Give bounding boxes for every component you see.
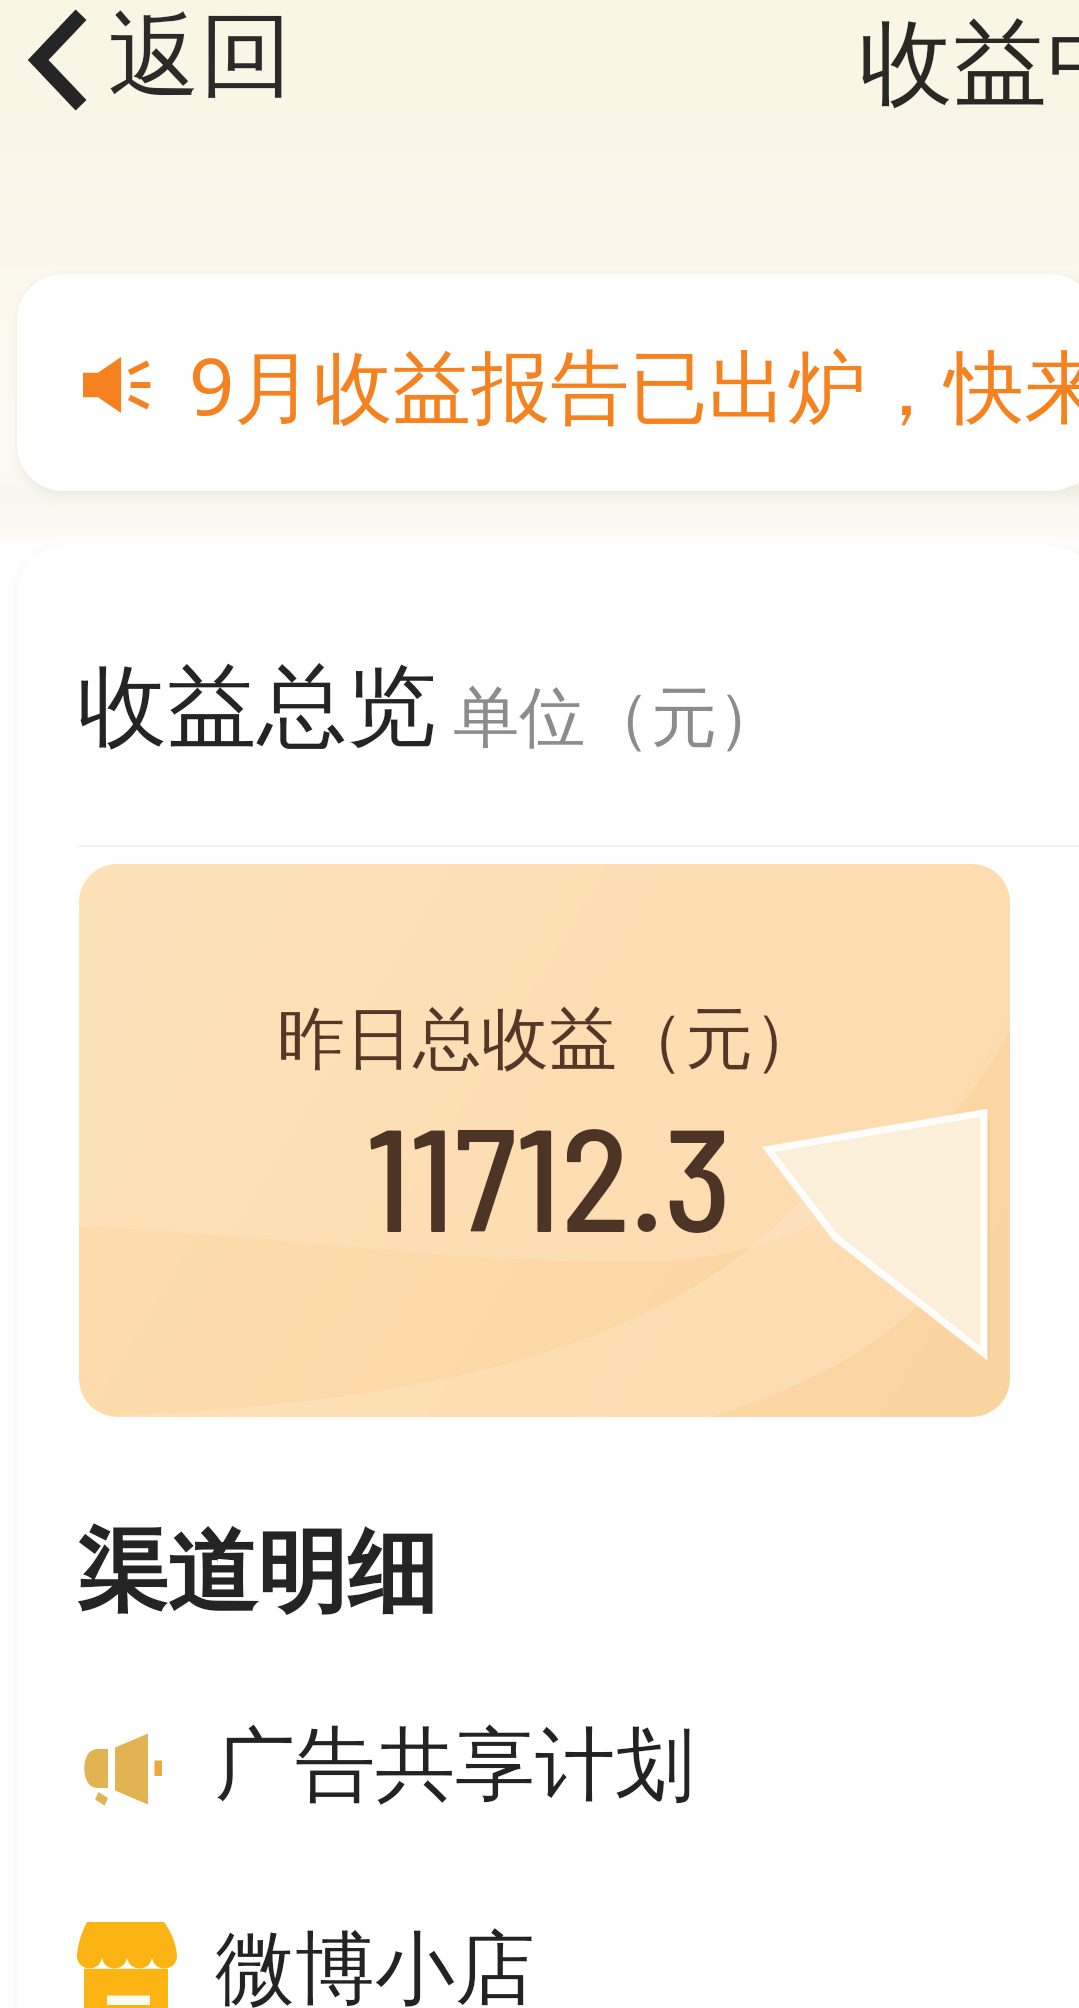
button[interactable]: 微博小店: [17, 1911, 1079, 2008]
staticText: 广告共享计划: [215, 1715, 695, 1816]
button[interactable]: 返回: [16, 0, 310, 128]
staticText: 收益总览: [77, 650, 437, 763]
button[interactable]: Announcement: [17, 274, 1079, 491]
staticText: 收益中心: [859, 4, 1079, 122]
staticText: 微博小店: [215, 1919, 535, 2008]
staticText: 昨日总收益（元）: [277, 997, 821, 1083]
button[interactable]: 昨日总收益（元）: [79, 864, 1010, 1417]
staticText: 9月收益报告已出炉，快来: [189, 331, 1079, 439]
staticText: 返回: [108, 0, 292, 114]
staticText: 渠道明细: [77, 1516, 437, 1629]
button[interactable]: 广告共享计划: [17, 1707, 1079, 1828]
staticText: 11712.3: [366, 1088, 732, 1261]
staticText: 单位（元）: [453, 676, 783, 759]
other: Announcement: [83, 357, 151, 413]
